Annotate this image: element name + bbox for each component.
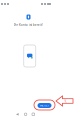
staticText: Ihr Konto ist bereit!	[14, 23, 43, 27]
button[interactable]: Home	[24, 113, 27, 116]
button[interactable]: Recent apps	[32, 113, 35, 116]
staticText: 1.	[64, 98, 67, 104]
button[interactable]: Weiter	[37, 103, 51, 108]
staticText: Weiter	[40, 104, 49, 107]
button[interactable]: Back	[16, 113, 19, 116]
